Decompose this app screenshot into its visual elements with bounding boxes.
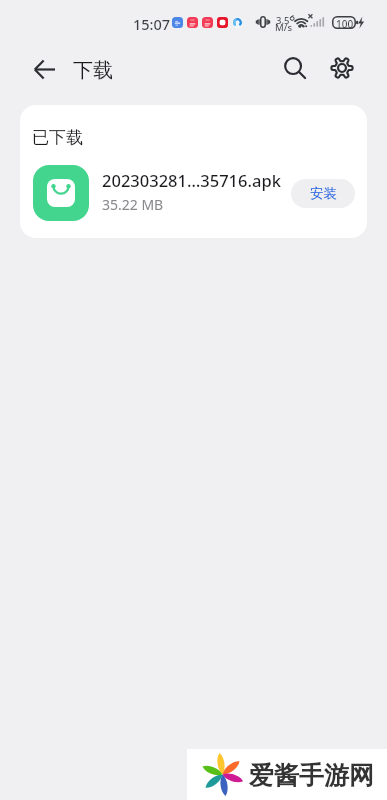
staticText: 已下载 (32, 127, 83, 148)
staticText: 15:07 (133, 14, 171, 34)
staticText: 3.5 (276, 14, 290, 27)
staticText: 35.22 MB (102, 195, 164, 214)
button[interactable]: 安装 (291, 179, 355, 208)
staticText: 下载 (73, 58, 113, 83)
staticText: 202303281…35716.apk (102, 169, 281, 191)
button[interactable]: Settings (323, 49, 361, 87)
staticText: 安装 (310, 185, 337, 202)
staticText: 100 (336, 17, 354, 30)
button[interactable]: Search (276, 49, 314, 87)
staticText: M/s (275, 21, 292, 34)
staticText: 爱酱手游网 (249, 760, 374, 791)
button[interactable]: 202303281…35716.apk (33, 165, 355, 221)
button[interactable]: Back (26, 51, 62, 87)
